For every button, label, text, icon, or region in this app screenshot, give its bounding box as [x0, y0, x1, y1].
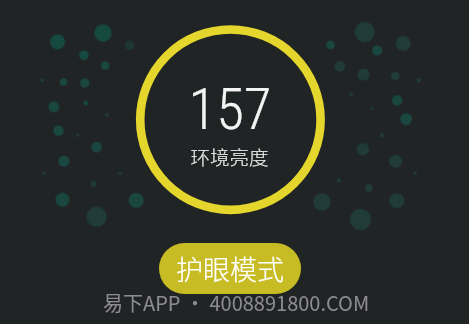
staticText: 环境亮度 [190, 142, 269, 168]
staticText: 护眼模式 [176, 249, 284, 288]
staticText: 易下APP • 4008891800.COM [103, 288, 370, 317]
button[interactable]: 护眼模式 [159, 243, 301, 294]
button[interactable]: Ambient brightness 157 [136, 26, 325, 215]
staticText: 157 [188, 76, 272, 136]
